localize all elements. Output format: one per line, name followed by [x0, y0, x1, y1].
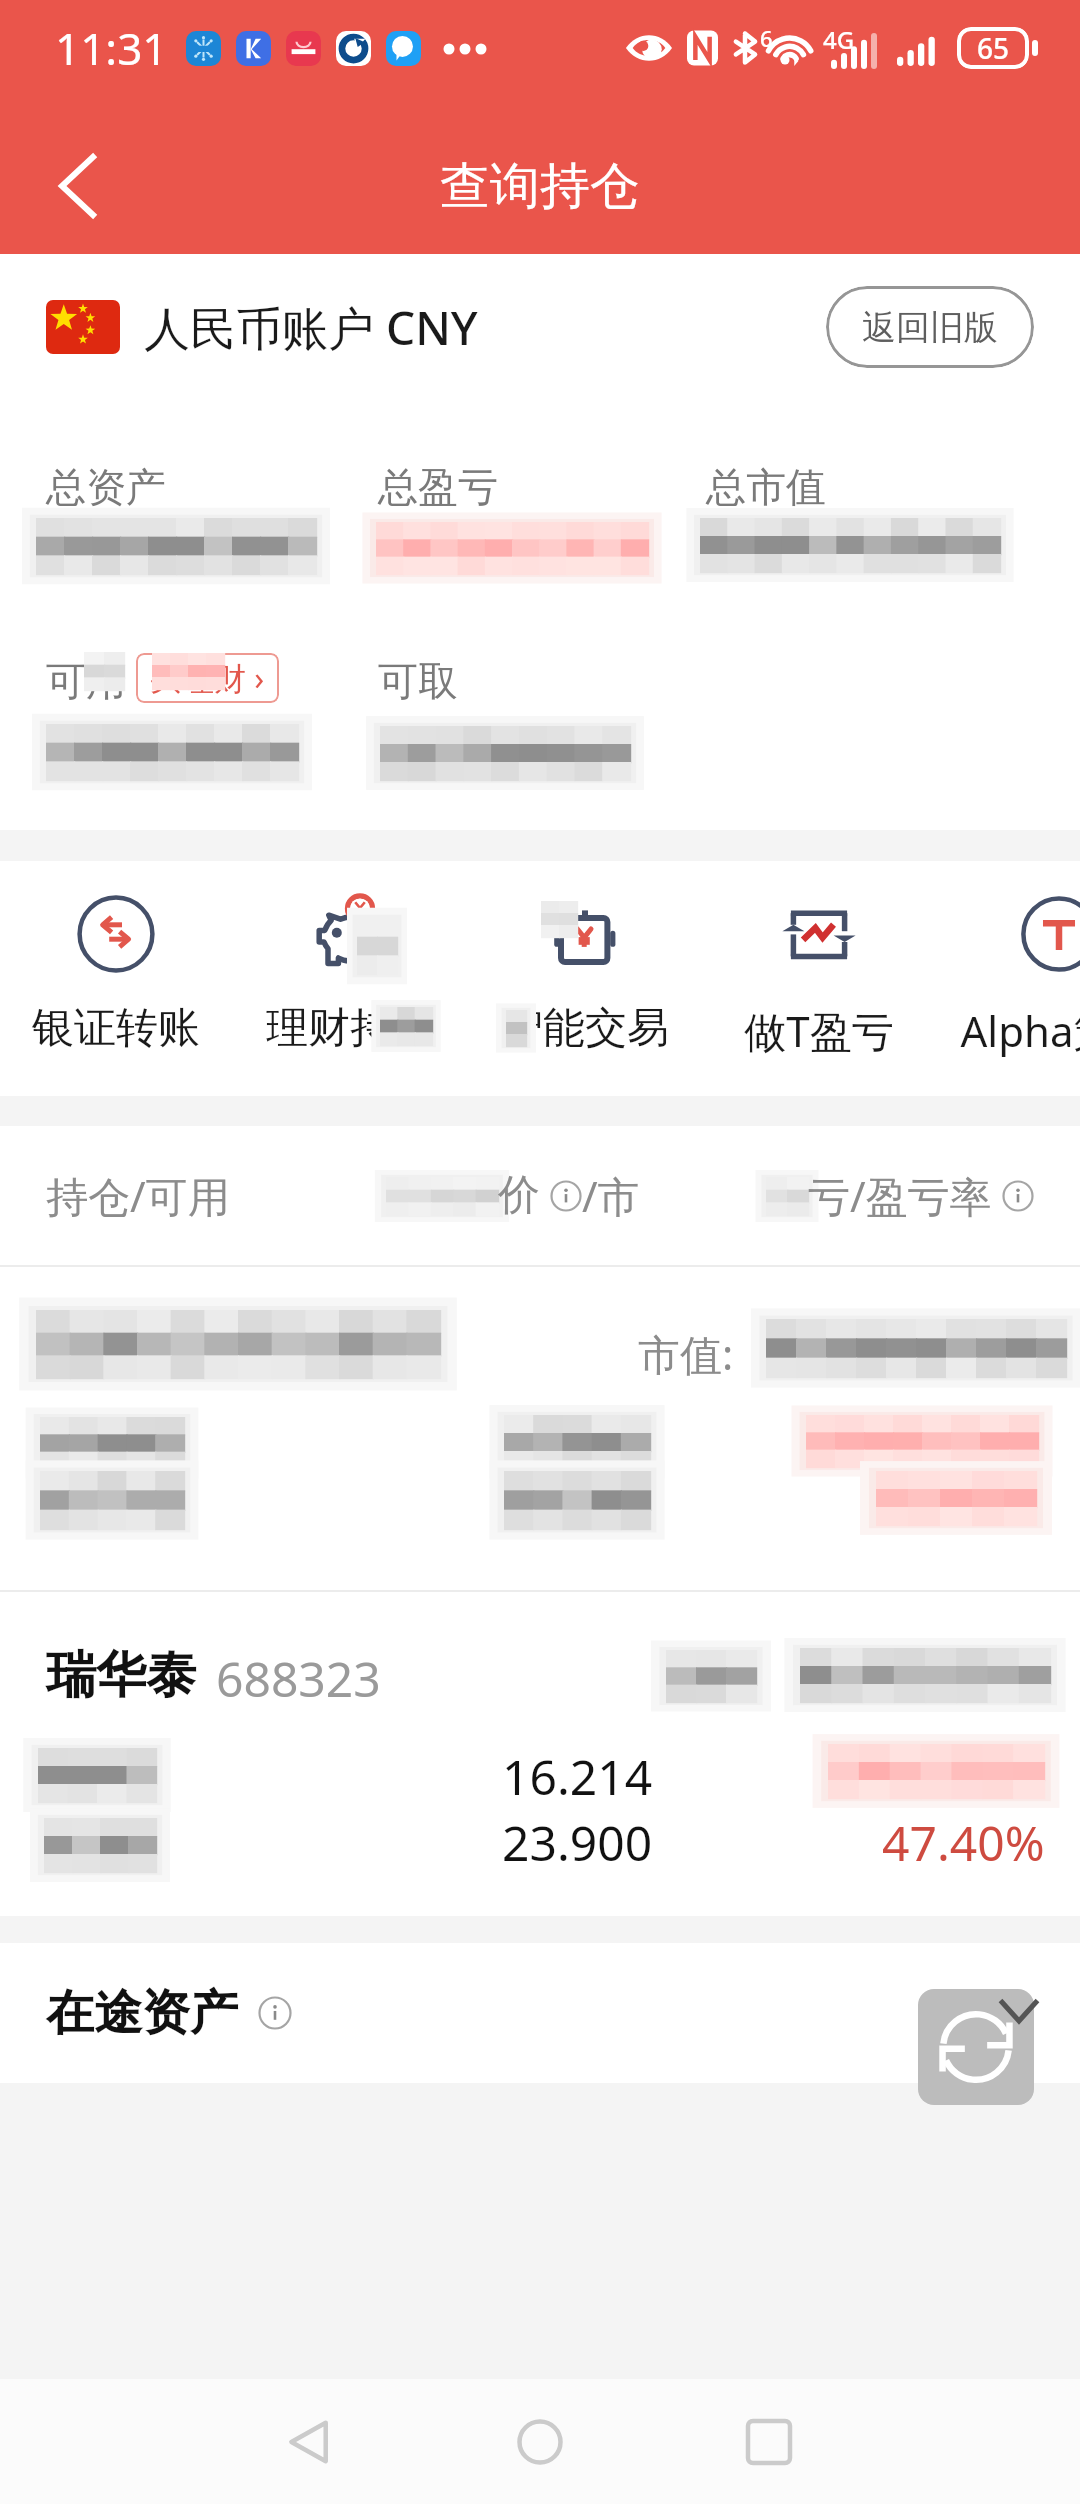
button[interactable]: 银证转账 [0, 894, 276, 1055]
staticText: 价 [498, 1169, 540, 1222]
button[interactable]: 做T盈亏 [659, 894, 979, 1059]
staticText: 智能交易 [425, 1002, 745, 1055]
staticText: 人民币账户 CNY [144, 296, 478, 359]
staticText: /市 [582, 1167, 640, 1224]
staticText: 可用 [46, 656, 126, 706]
staticText: 23.900 [502, 1810, 653, 1875]
button[interactable]: Back [229, 2379, 389, 2504]
staticText: 65 [977, 29, 1010, 67]
staticText: 6 [760, 23, 773, 53]
button[interactable]: 买理财 › [150, 653, 265, 703]
staticText: 返回旧版 [862, 306, 998, 349]
button[interactable]: Refresh [918, 1989, 1034, 2105]
button[interactable]: 市值: [0, 1267, 1080, 1592]
button[interactable]: Home [460, 2379, 620, 2504]
button[interactable]: Recents [689, 2379, 849, 2504]
staticText: 瑞华泰 [46, 1644, 196, 1707]
button[interactable]: 理财持仓 [190, 894, 510, 1055]
staticText: 4G [823, 23, 855, 56]
staticText: 持仓/可用 [46, 1167, 230, 1224]
staticText: 16.214 [502, 1744, 653, 1809]
staticText: 银证转账 [0, 1002, 276, 1055]
staticText: 市值: [638, 1325, 734, 1382]
staticText: 买理财 › [150, 656, 265, 700]
staticText: 在途资产 [46, 1983, 238, 2043]
staticText: 688323 [216, 1646, 381, 1711]
button[interactable]: 智能交易 [425, 894, 745, 1055]
staticText: 总盈亏 [378, 462, 498, 512]
button[interactable]: Back [24, 131, 134, 241]
staticText: 总资产 [46, 462, 166, 512]
button[interactable]: 瑞华泰 [0, 1592, 1080, 1916]
staticText: 47.40% [882, 1810, 1045, 1875]
staticText: 做T盈亏 [659, 1002, 979, 1059]
staticText: 亏/盈亏率 [808, 1167, 992, 1224]
staticText: 11:31 [55, 18, 168, 78]
staticText: 理财持仓 [190, 1002, 510, 1055]
staticText: Alpha策略 [899, 1002, 1080, 1059]
staticText: 总市值 [706, 462, 826, 512]
staticText: 可取 [378, 656, 458, 706]
button[interactable]: Alpha策略 [899, 894, 1080, 1059]
staticText: 查询持仓 [440, 155, 640, 218]
button[interactable]: 返回旧版 [826, 286, 1034, 368]
button[interactable]: 在途资产 [46, 1943, 1034, 2083]
